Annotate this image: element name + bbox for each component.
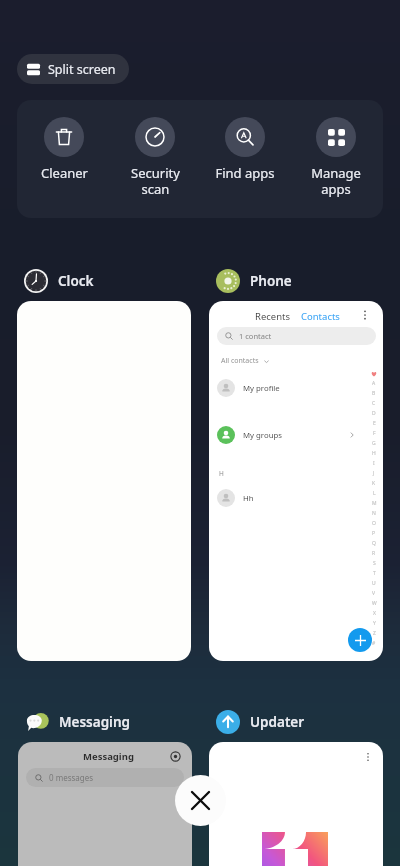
staticText: D [372, 410, 376, 417]
staticText: I [373, 460, 375, 467]
button[interactable]: Updater [216, 710, 305, 734]
staticText: P [372, 530, 376, 537]
staticText: Updater [250, 713, 305, 731]
staticText: J [373, 470, 375, 477]
staticText: E [373, 420, 376, 427]
button[interactable]: My groups [217, 426, 375, 444]
staticText: Security scan [131, 164, 180, 197]
button[interactable]: Phone [216, 269, 292, 293]
staticText: G [372, 440, 376, 447]
staticText: U [372, 580, 376, 587]
button[interactable]: Settings [168, 749, 182, 763]
staticText: H [372, 450, 376, 457]
button[interactable]: Add contact [348, 628, 372, 652]
staticText: L [373, 490, 376, 497]
button[interactable]: More options [209, 742, 383, 866]
staticText: N [372, 510, 376, 517]
button[interactable]: Clock [24, 269, 94, 293]
staticText: Find apps [215, 164, 275, 182]
button[interactable]: Split screen [17, 54, 129, 84]
staticText: Q [372, 540, 376, 547]
button[interactable]: Cleaner [21, 100, 107, 182]
staticText: Hh [243, 493, 254, 504]
button[interactable]: Recents [255, 310, 291, 323]
staticText: Messaging [83, 750, 134, 763]
button[interactable]: 1 contact [217, 327, 376, 345]
staticText: S [373, 560, 376, 567]
staticText: X [373, 610, 376, 617]
staticText: R [372, 550, 376, 557]
button[interactable]: 0 messages [26, 768, 184, 787]
button[interactable] [17, 301, 191, 661]
staticText: All contacts [221, 356, 259, 366]
staticText: Y [373, 620, 376, 627]
staticText: Phone [250, 272, 292, 290]
staticText: K [372, 480, 376, 487]
button[interactable]: Contacts [301, 310, 340, 323]
staticText: A [372, 380, 376, 387]
staticText: H [219, 469, 224, 478]
staticText: T [373, 570, 376, 577]
staticText: 0 messages [49, 772, 94, 783]
staticText: W [372, 600, 377, 607]
staticText: Clock [58, 272, 94, 290]
button[interactable]: Recents [209, 301, 383, 661]
staticText: Z [373, 630, 376, 637]
button[interactable]: All contacts [221, 356, 270, 366]
staticText: V [372, 590, 376, 597]
staticText: M [372, 500, 377, 507]
button[interactable]: Messaging [25, 710, 130, 734]
staticText: Messaging [59, 713, 130, 731]
staticText: My groups [243, 430, 282, 441]
staticText: My profile [243, 383, 280, 394]
staticText: # [372, 640, 376, 647]
staticText: C [372, 400, 376, 407]
button[interactable]: Hh [217, 489, 375, 507]
staticText: O [372, 520, 376, 527]
button[interactable]: More options [361, 750, 375, 764]
button[interactable]: Messaging [18, 742, 192, 866]
button[interactable]: My profile [217, 379, 375, 397]
button[interactable]: Security scan [112, 100, 198, 197]
staticText: Cleaner [41, 164, 88, 182]
staticText: 1 contact [239, 331, 272, 341]
button[interactable]: Close all [175, 775, 226, 826]
staticText: Manage apps [311, 164, 361, 197]
button[interactable]: Find apps [202, 100, 288, 182]
button[interactable]: More options [357, 307, 373, 323]
staticText: Split screen [48, 61, 116, 78]
button[interactable]: Manage apps [293, 100, 379, 197]
staticText: F [373, 430, 376, 437]
staticText: B [372, 390, 376, 397]
